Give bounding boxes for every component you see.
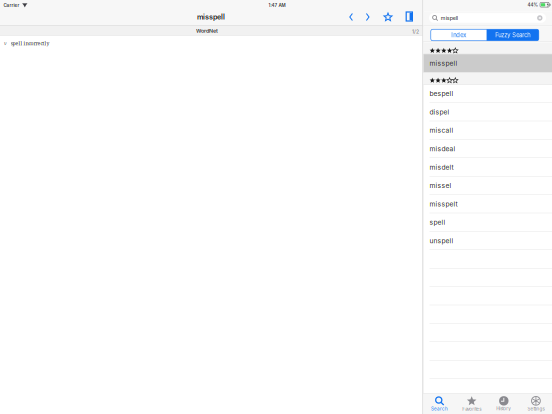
- staticText: missel: [429, 182, 451, 190]
- button[interactable]: Previous entry: [343, 10, 360, 24]
- staticText: 44%: [527, 2, 538, 8]
- button[interactable]: mispell: [429, 13, 546, 23]
- button[interactable]: Next entry: [359, 10, 376, 24]
- staticText: Settings: [527, 406, 544, 412]
- staticText: Index: [451, 31, 466, 39]
- staticText: spell incorrectly: [10, 40, 49, 47]
- button[interactable]: misspell: [429, 54, 529, 73]
- button[interactable]: Dictionaries: [401, 9, 418, 23]
- button[interactable]: Fuzzy Search: [487, 29, 539, 41]
- button[interactable]: missel: [429, 176, 529, 195]
- button[interactable]: misdelt: [429, 158, 529, 176]
- staticText: mispell: [441, 15, 458, 21]
- button[interactable]: History: [488, 394, 520, 414]
- staticText: dispel: [429, 108, 449, 116]
- staticText: History: [496, 406, 511, 411]
- button[interactable]: Favorites: [456, 394, 488, 414]
- button[interactable]: bespell: [429, 84, 529, 103]
- button[interactable]: miscall: [429, 121, 529, 140]
- staticText: misdelt: [429, 163, 453, 171]
- staticText: v: [4, 40, 7, 46]
- staticText: Favorites: [462, 406, 481, 412]
- button[interactable]: Add to favorites: [379, 10, 396, 24]
- button[interactable]: Settings: [520, 394, 552, 414]
- staticText: unspell: [429, 237, 453, 245]
- button[interactable]: Search: [423, 394, 456, 414]
- staticText: 1:47 AM: [268, 3, 285, 8]
- staticText: bespell: [429, 90, 453, 98]
- staticText: Search: [431, 406, 448, 412]
- button[interactable]: misspelt: [429, 195, 529, 213]
- button[interactable]: misdeal: [429, 140, 529, 158]
- staticText: misspell: [197, 13, 225, 21]
- button[interactable]: dispel: [429, 103, 529, 121]
- staticText: Carrier: [3, 3, 19, 8]
- staticText: misspell: [429, 59, 457, 67]
- button[interactable]: unspell: [429, 232, 529, 250]
- staticText: miscall: [429, 126, 453, 134]
- button[interactable]: Index: [431, 29, 487, 41]
- button[interactable]: spell: [429, 213, 529, 232]
- staticText: Fuzzy Search: [495, 31, 530, 39]
- staticText: misdeal: [429, 145, 455, 153]
- staticText: WordNet: [196, 27, 218, 34]
- staticText: spell: [429, 218, 445, 226]
- staticText: misspelt: [429, 200, 457, 208]
- staticText: 1/2: [412, 29, 419, 35]
